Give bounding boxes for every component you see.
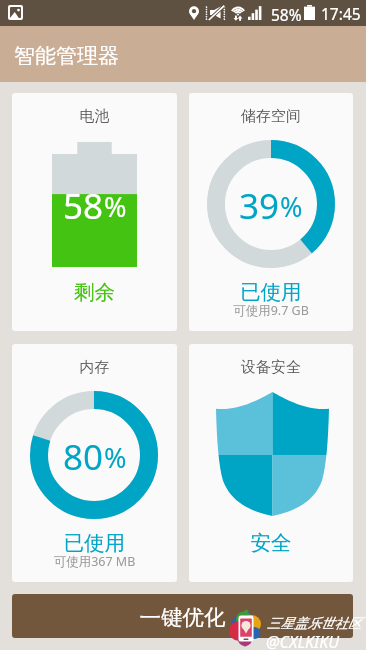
staticText: 已使用 — [189, 279, 353, 305]
staticText: 一键优化 — [12, 604, 353, 631]
staticText: 安全 — [189, 530, 353, 556]
staticText: % — [280, 188, 303, 225]
button[interactable]: 电池 — [12, 93, 177, 331]
other: Screenshot notification — [8, 5, 23, 20]
staticText: 内存 — [12, 358, 177, 377]
staticText: 可使用367 MB — [12, 553, 177, 570]
staticText: 电池 — [12, 107, 177, 126]
staticText: 设备安全 — [189, 358, 353, 377]
staticText: 已使用 — [12, 530, 177, 556]
button[interactable]: 一键优化 — [12, 594, 353, 638]
other: Sound muted — [205, 5, 226, 20]
staticText: 58% — [271, 4, 302, 25]
staticText: 17:45 — [321, 3, 361, 24]
staticText: @CXLKIKU — [266, 631, 340, 650]
button[interactable]: 内存 — [12, 344, 177, 582]
other: Battery — [304, 5, 315, 20]
button[interactable]: 储存空间 — [189, 93, 353, 331]
staticText: 80 — [63, 433, 104, 481]
staticText: 可使用9.7 GB — [189, 302, 353, 319]
other: Location — [189, 6, 199, 20]
staticText: 三星盖乐世社区 — [267, 615, 362, 632]
staticText: 39 — [239, 182, 280, 230]
staticText: % — [104, 439, 127, 476]
staticText: 智能管理器 — [14, 43, 119, 69]
staticText: 剩余 — [12, 279, 177, 305]
staticText: 58 — [63, 182, 104, 230]
staticText: 储存空间 — [189, 107, 353, 126]
button[interactable]: 设备安全 — [189, 344, 353, 582]
staticText: % — [104, 188, 127, 225]
other: Mobile signal — [248, 5, 263, 20]
other: Wi-Fi — [230, 5, 246, 21]
